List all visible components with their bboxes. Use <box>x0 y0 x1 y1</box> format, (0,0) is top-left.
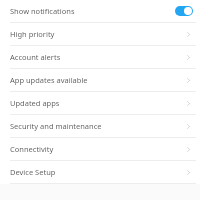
staticText: Security and maintenance <box>10 121 184 131</box>
staticText: Device Setup <box>10 167 184 177</box>
button[interactable]: Connectivity <box>0 138 200 160</box>
staticText: Show notifications <box>10 6 175 16</box>
button[interactable]: Show notifications <box>0 0 200 22</box>
button[interactable]: Updated apps <box>0 92 200 114</box>
button[interactable]: Account alerts <box>0 46 200 68</box>
staticText: Account alerts <box>10 52 184 62</box>
staticText: Updated apps <box>10 98 184 108</box>
staticText: High priority <box>10 29 184 39</box>
button[interactable]: Show notifications toggle, on <box>175 6 193 16</box>
button[interactable]: High priority <box>0 23 200 45</box>
button[interactable]: Security and maintenance <box>0 115 200 137</box>
button[interactable]: App updates available <box>0 69 200 91</box>
staticText: Connectivity <box>10 144 184 154</box>
button[interactable]: Device Setup <box>0 161 200 183</box>
staticText: App updates available <box>10 75 184 85</box>
